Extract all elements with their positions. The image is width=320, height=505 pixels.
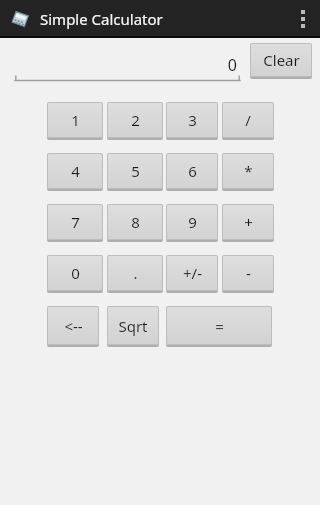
staticText: Clear <box>263 50 300 70</box>
button[interactable]: <-- <box>47 306 99 347</box>
staticText: +/- <box>183 263 202 283</box>
button[interactable]: + <box>222 204 274 242</box>
staticText: 5 <box>131 161 140 181</box>
staticText: * <box>244 161 253 181</box>
staticText: 9 <box>188 212 197 232</box>
staticText: 0 <box>71 263 80 283</box>
staticText: = <box>215 316 224 336</box>
staticText: - <box>246 263 251 283</box>
staticText: Simple Calculator <box>40 9 163 29</box>
button[interactable]: / <box>222 102 274 140</box>
button[interactable]: 8 <box>107 204 163 242</box>
button[interactable]: 0 <box>15 52 240 82</box>
staticText: . <box>133 263 138 283</box>
staticText: 7 <box>71 212 80 232</box>
staticText: 0 <box>227 54 237 76</box>
button[interactable]: More options <box>286 0 320 38</box>
button[interactable]: . <box>107 255 163 293</box>
button[interactable]: * <box>222 153 274 191</box>
staticText: 8 <box>131 212 140 232</box>
button[interactable]: = <box>166 306 272 347</box>
button[interactable]: Sqrt <box>107 306 159 347</box>
staticText: 3 <box>188 110 197 130</box>
button[interactable]: 0 <box>47 255 103 293</box>
button[interactable]: 4 <box>47 153 103 191</box>
staticText: 2 <box>131 110 140 130</box>
button[interactable]: 2 <box>107 102 163 140</box>
staticText: 4 <box>71 161 80 181</box>
button[interactable]: 6 <box>166 153 218 191</box>
button[interactable]: 7 <box>47 204 103 242</box>
button[interactable]: 1 <box>47 102 103 140</box>
staticText: Sqrt <box>118 316 148 336</box>
staticText: + <box>244 212 253 232</box>
button[interactable]: 9 <box>166 204 218 242</box>
button[interactable]: - <box>222 255 274 293</box>
staticText: / <box>245 110 251 130</box>
button[interactable]: 3 <box>166 102 218 140</box>
staticText: 1 <box>71 110 80 130</box>
button[interactable]: 5 <box>107 153 163 191</box>
button[interactable]: +/- <box>166 255 218 293</box>
staticText: 6 <box>188 161 197 181</box>
staticText: <-- <box>64 316 83 336</box>
button[interactable]: Clear <box>250 43 312 79</box>
